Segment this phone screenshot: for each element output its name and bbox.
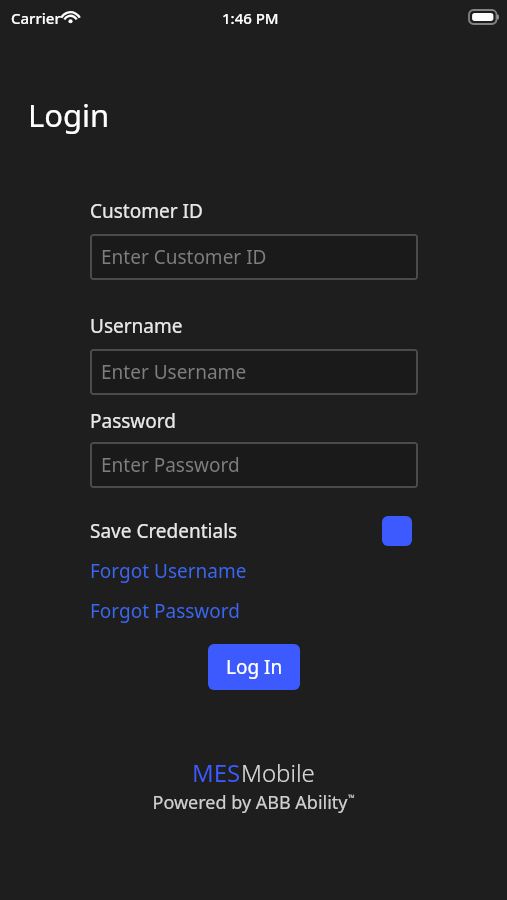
staticText: MES <box>192 756 241 789</box>
staticText: Customer ID <box>90 198 203 224</box>
staticText: Password <box>90 408 176 434</box>
button[interactable]: Save Credentials <box>90 514 418 548</box>
staticText: Powered by ABB Ability <box>152 790 348 815</box>
button[interactable]: Forgot Username <box>90 557 255 585</box>
staticText: Username <box>90 313 183 339</box>
button[interactable]: Forgot Password <box>90 597 248 625</box>
staticText: ™ <box>348 791 355 803</box>
staticText: Forgot Password <box>90 598 240 624</box>
other: Save credentials checkbox <box>382 516 412 546</box>
staticText: Enter Customer ID <box>101 244 267 270</box>
staticText: Carrier <box>11 8 61 28</box>
staticText: Log In <box>226 654 283 680</box>
button[interactable]: Enter Password <box>90 442 418 488</box>
staticText: Enter Username <box>101 359 247 385</box>
button[interactable]: Enter Customer ID <box>90 234 418 280</box>
staticText: Mobile <box>241 756 315 789</box>
button[interactable]: Log In <box>208 644 300 690</box>
button[interactable]: Enter Username <box>90 349 418 395</box>
staticText: Enter Password <box>101 452 240 478</box>
staticText: Save Credentials <box>90 518 238 544</box>
other: Battery full <box>469 10 499 24</box>
other: Wi-Fi <box>60 8 81 24</box>
staticText: Forgot Username <box>90 558 247 584</box>
staticText: 1:46 PM <box>222 8 279 28</box>
staticText: Login <box>28 94 110 136</box>
